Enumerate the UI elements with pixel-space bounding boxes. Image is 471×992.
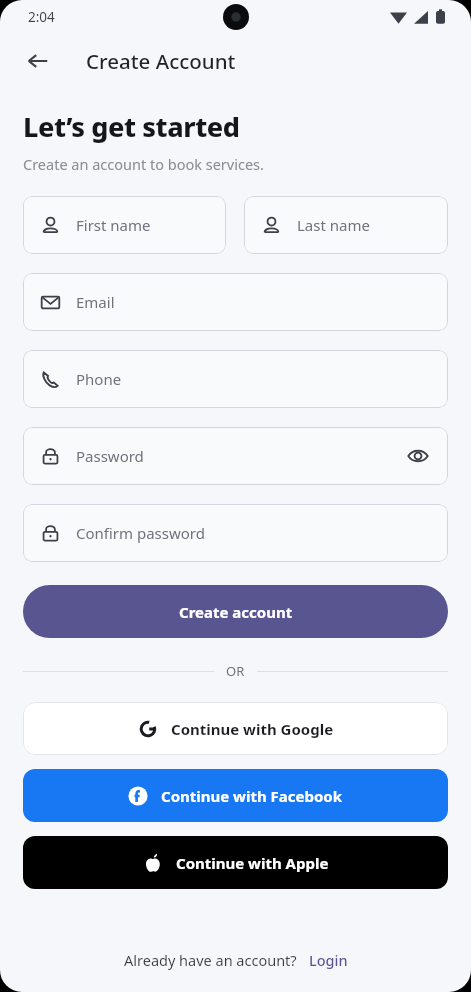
button[interactable]: Continue with Google [23,702,448,755]
staticText: Password [76,446,144,466]
button[interactable]: Show password [405,443,431,469]
button[interactable]: Login [309,950,348,970]
button[interactable]: Last name [244,196,448,254]
staticText: Create an account to book services. [23,154,264,174]
staticText: Create account [179,602,293,622]
staticText: Login [309,950,348,970]
button[interactable]: Back [20,43,56,79]
staticText: Already have an account? [124,950,297,970]
button[interactable]: Create account [23,585,448,638]
button[interactable]: Confirm password [23,504,448,562]
staticText: Confirm password [76,523,205,543]
staticText: 2:04 [28,8,55,26]
staticText: Continue with Apple [176,853,329,873]
button[interactable]: Phone [23,350,448,408]
staticText: Phone [76,369,122,389]
staticText: Continue with Facebook [161,786,343,806]
staticText: Create Account [86,47,236,75]
button[interactable]: Continue with Apple [23,836,448,889]
button[interactable]: Continue with Facebook [23,769,448,822]
button[interactable]: First name [23,196,226,254]
staticText: Email [76,292,115,312]
staticText: Continue with Google [171,719,334,739]
staticText: Last name [297,215,370,235]
staticText: Let’s get started [23,108,240,145]
button[interactable]: Password [23,427,448,485]
staticText: OR [226,662,245,680]
button[interactable]: Email [23,273,448,331]
staticText: First name [76,215,151,235]
